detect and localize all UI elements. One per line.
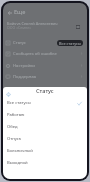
button[interactable]: Статус <box>3 37 87 48</box>
staticText: Бойчук Сергей Алексеевич <box>7 21 58 25</box>
staticText: Поддержка <box>13 74 80 80</box>
staticText: Обед <box>7 124 82 130</box>
button[interactable]: Все статусы <box>3 97 87 109</box>
button[interactable]: Больничный <box>3 145 87 157</box>
staticText: Статус <box>13 40 57 46</box>
staticText: Отпуск <box>7 136 82 142</box>
staticText: Статус <box>36 87 54 94</box>
staticText: Работаю <box>7 112 82 118</box>
button[interactable]: Отпуск <box>3 133 87 145</box>
staticText: Еще <box>14 8 26 16</box>
staticText: Все статусы <box>59 41 81 46</box>
staticText: Выходной <box>7 160 82 166</box>
staticText: Больничный <box>7 148 82 154</box>
staticText: ООО «Семпл» <box>7 25 32 29</box>
button[interactable]: Обед <box>3 121 87 133</box>
button[interactable]: Back <box>5 8 14 17</box>
button[interactable]: Show QR code <box>73 22 82 31</box>
button[interactable]: Выходной <box>3 157 87 169</box>
staticText: Все статусы <box>7 100 77 106</box>
staticText: Сообщить об ошибке <box>13 51 80 57</box>
button[interactable]: Сообщить об ошибке <box>3 48 87 59</box>
button[interactable]: Работаю <box>3 109 87 121</box>
button[interactable]: Поддержка <box>3 71 87 82</box>
staticText: Настройки <box>13 63 80 69</box>
button[interactable]: Настройки <box>3 60 87 71</box>
